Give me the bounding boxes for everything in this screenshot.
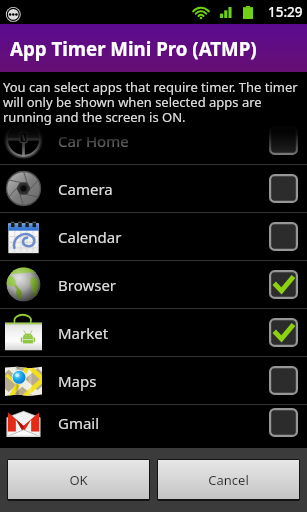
button[interactable]: Gmail [0,405,307,440]
staticText: Market [58,323,109,343]
staticText: Calendar [58,227,122,247]
button[interactable]: Market [0,309,307,356]
staticText: Maps [58,371,97,391]
button[interactable]: Browser [0,261,307,308]
staticText: Cancel [208,471,249,489]
button[interactable]: Calendar [0,213,307,260]
staticText: 15:29 [268,3,303,21]
button[interactable]: Cancel [158,460,299,499]
button[interactable]: Maps [0,357,307,404]
staticText: Gmail [58,413,100,433]
button[interactable]: OK [8,460,149,499]
staticText: Camera [58,179,113,199]
button[interactable]: Camera [0,165,307,212]
staticText: Car Home [58,131,129,151]
button[interactable]: Car Home [0,125,307,164]
staticText: You can select apps that require timer. … [3,78,298,125]
staticText: App Timer Mini Pro (ATMP) [10,36,257,61]
staticText: OK [69,471,88,489]
staticText: Browser [58,275,117,295]
